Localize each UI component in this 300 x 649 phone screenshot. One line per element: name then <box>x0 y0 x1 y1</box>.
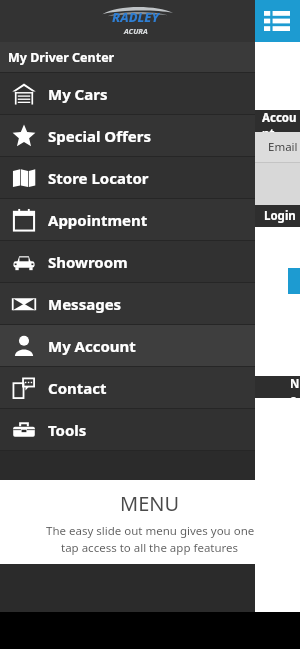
button[interactable]: Tools <box>0 409 255 450</box>
staticText: MENU <box>120 490 180 517</box>
button[interactable]: Showroom <box>0 241 255 282</box>
button[interactable]: Appointment <box>0 199 255 240</box>
staticText: Store Locator <box>48 168 149 188</box>
staticText: My Account <box>48 336 136 356</box>
staticText: Messages <box>48 294 122 314</box>
button[interactable]: Messages <box>0 283 255 324</box>
staticText: Login <box>264 208 296 224</box>
staticText: Email <box>268 139 298 155</box>
staticText: Appointment <box>48 210 148 230</box>
staticText: tap access to all the app features <box>61 540 239 556</box>
button[interactable]: My Cars <box>0 73 255 114</box>
staticText: Showroom <box>48 252 128 272</box>
button[interactable]: Contact <box>0 367 255 408</box>
staticText: Account <box>262 110 300 132</box>
staticText: RADLEY <box>112 8 160 26</box>
staticText: Contact <box>48 378 107 398</box>
staticText: News <box>290 376 300 398</box>
button[interactable]: My Account <box>0 325 255 366</box>
staticText: My Driver Center <box>8 49 115 66</box>
staticText: My Cars <box>48 84 108 104</box>
staticText: Tools <box>48 420 87 440</box>
button[interactable]: Menu <box>254 0 300 42</box>
button[interactable]: Special Offers <box>0 115 255 156</box>
button[interactable]: Store Locator <box>0 157 255 198</box>
staticText: The easy slide out menu gives you one <box>46 523 255 539</box>
staticText: ACURA <box>124 26 148 36</box>
staticText: Special Offers <box>48 126 151 146</box>
